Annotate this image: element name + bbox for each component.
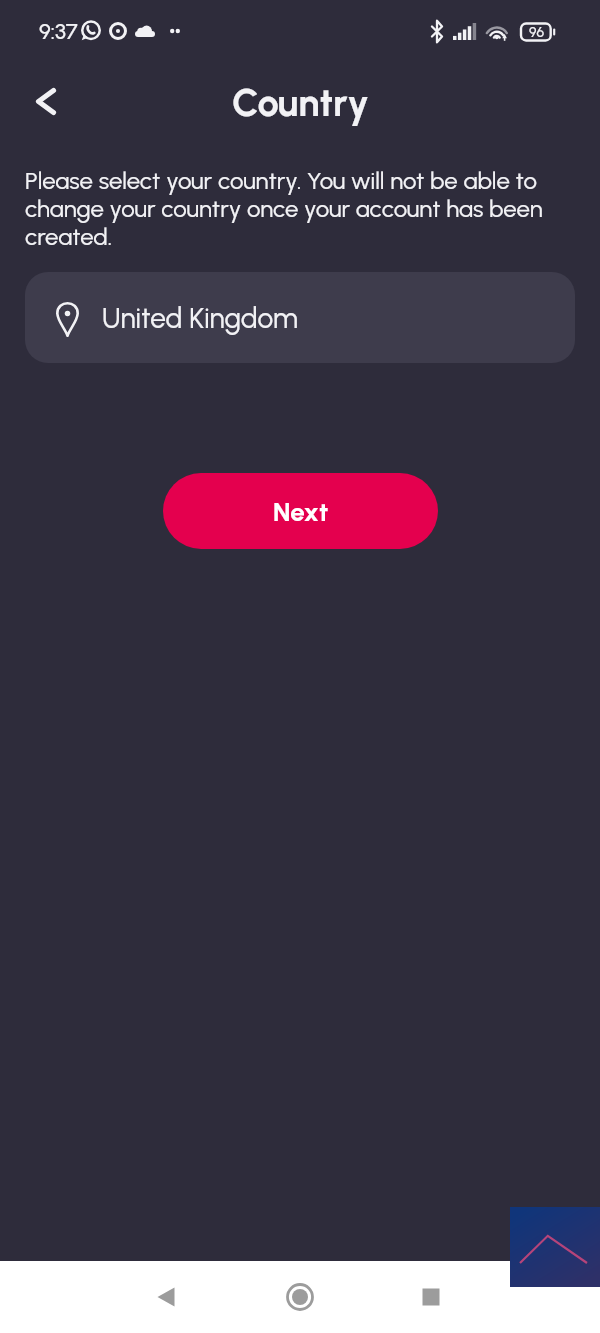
- staticText: Country: [232, 80, 369, 126]
- staticText: United Kingdom: [102, 301, 298, 335]
- staticText: Next: [273, 496, 329, 527]
- staticText: 9:37: [39, 18, 78, 44]
- staticText: Please select your country. You will not…: [25, 166, 573, 251]
- button[interactable]: Back: [18, 73, 74, 129]
- button[interactable]: Recent apps: [398, 1264, 464, 1330]
- staticText: 96: [529, 24, 545, 41]
- button[interactable]: Back: [133, 1264, 199, 1330]
- button[interactable]: Next: [163, 473, 438, 549]
- button[interactable]: Home: [267, 1264, 333, 1330]
- button[interactable]: United Kingdom: [25, 272, 575, 363]
